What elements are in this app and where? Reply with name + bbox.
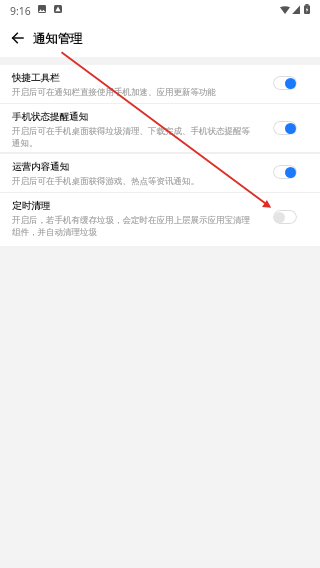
staticText: 开启后可在手机桌面获得游戏、热点等资讯通知。 [12, 176, 199, 187]
button[interactable]: 快捷工具栏 [0, 65, 320, 103]
button[interactable]: Switch on [273, 165, 297, 179]
staticText: 通知管理 [33, 31, 83, 47]
staticText: 定时清理 [12, 200, 50, 212]
button[interactable]: Switch off [273, 210, 297, 224]
staticText: 开启后，若手机有缓存垃圾，会定时在应用上层展示应用宝清理组件，并自动清理垃圾 [12, 215, 256, 238]
button[interactable]: Back [0, 22, 34, 54]
button[interactable]: 运营内容通知 [0, 154, 320, 192]
staticText: 开启后可在通知栏直接使用手机加速、应用更新等功能 [12, 87, 216, 98]
staticText: 9:16 [10, 4, 31, 18]
staticText: 手机状态提醒通知 [12, 111, 88, 123]
button[interactable]: 手机状态提醒通知 [0, 104, 320, 152]
button[interactable]: Switch on [273, 121, 297, 135]
staticText: 开启后可在手机桌面获得垃圾清理、下载完成、手机状态提醒等通知。 [12, 126, 256, 149]
button[interactable]: 定时清理 [0, 193, 320, 246]
button[interactable]: Switch on [273, 76, 297, 90]
staticText: 快捷工具栏 [12, 72, 60, 84]
staticText: 运营内容通知 [12, 161, 69, 173]
